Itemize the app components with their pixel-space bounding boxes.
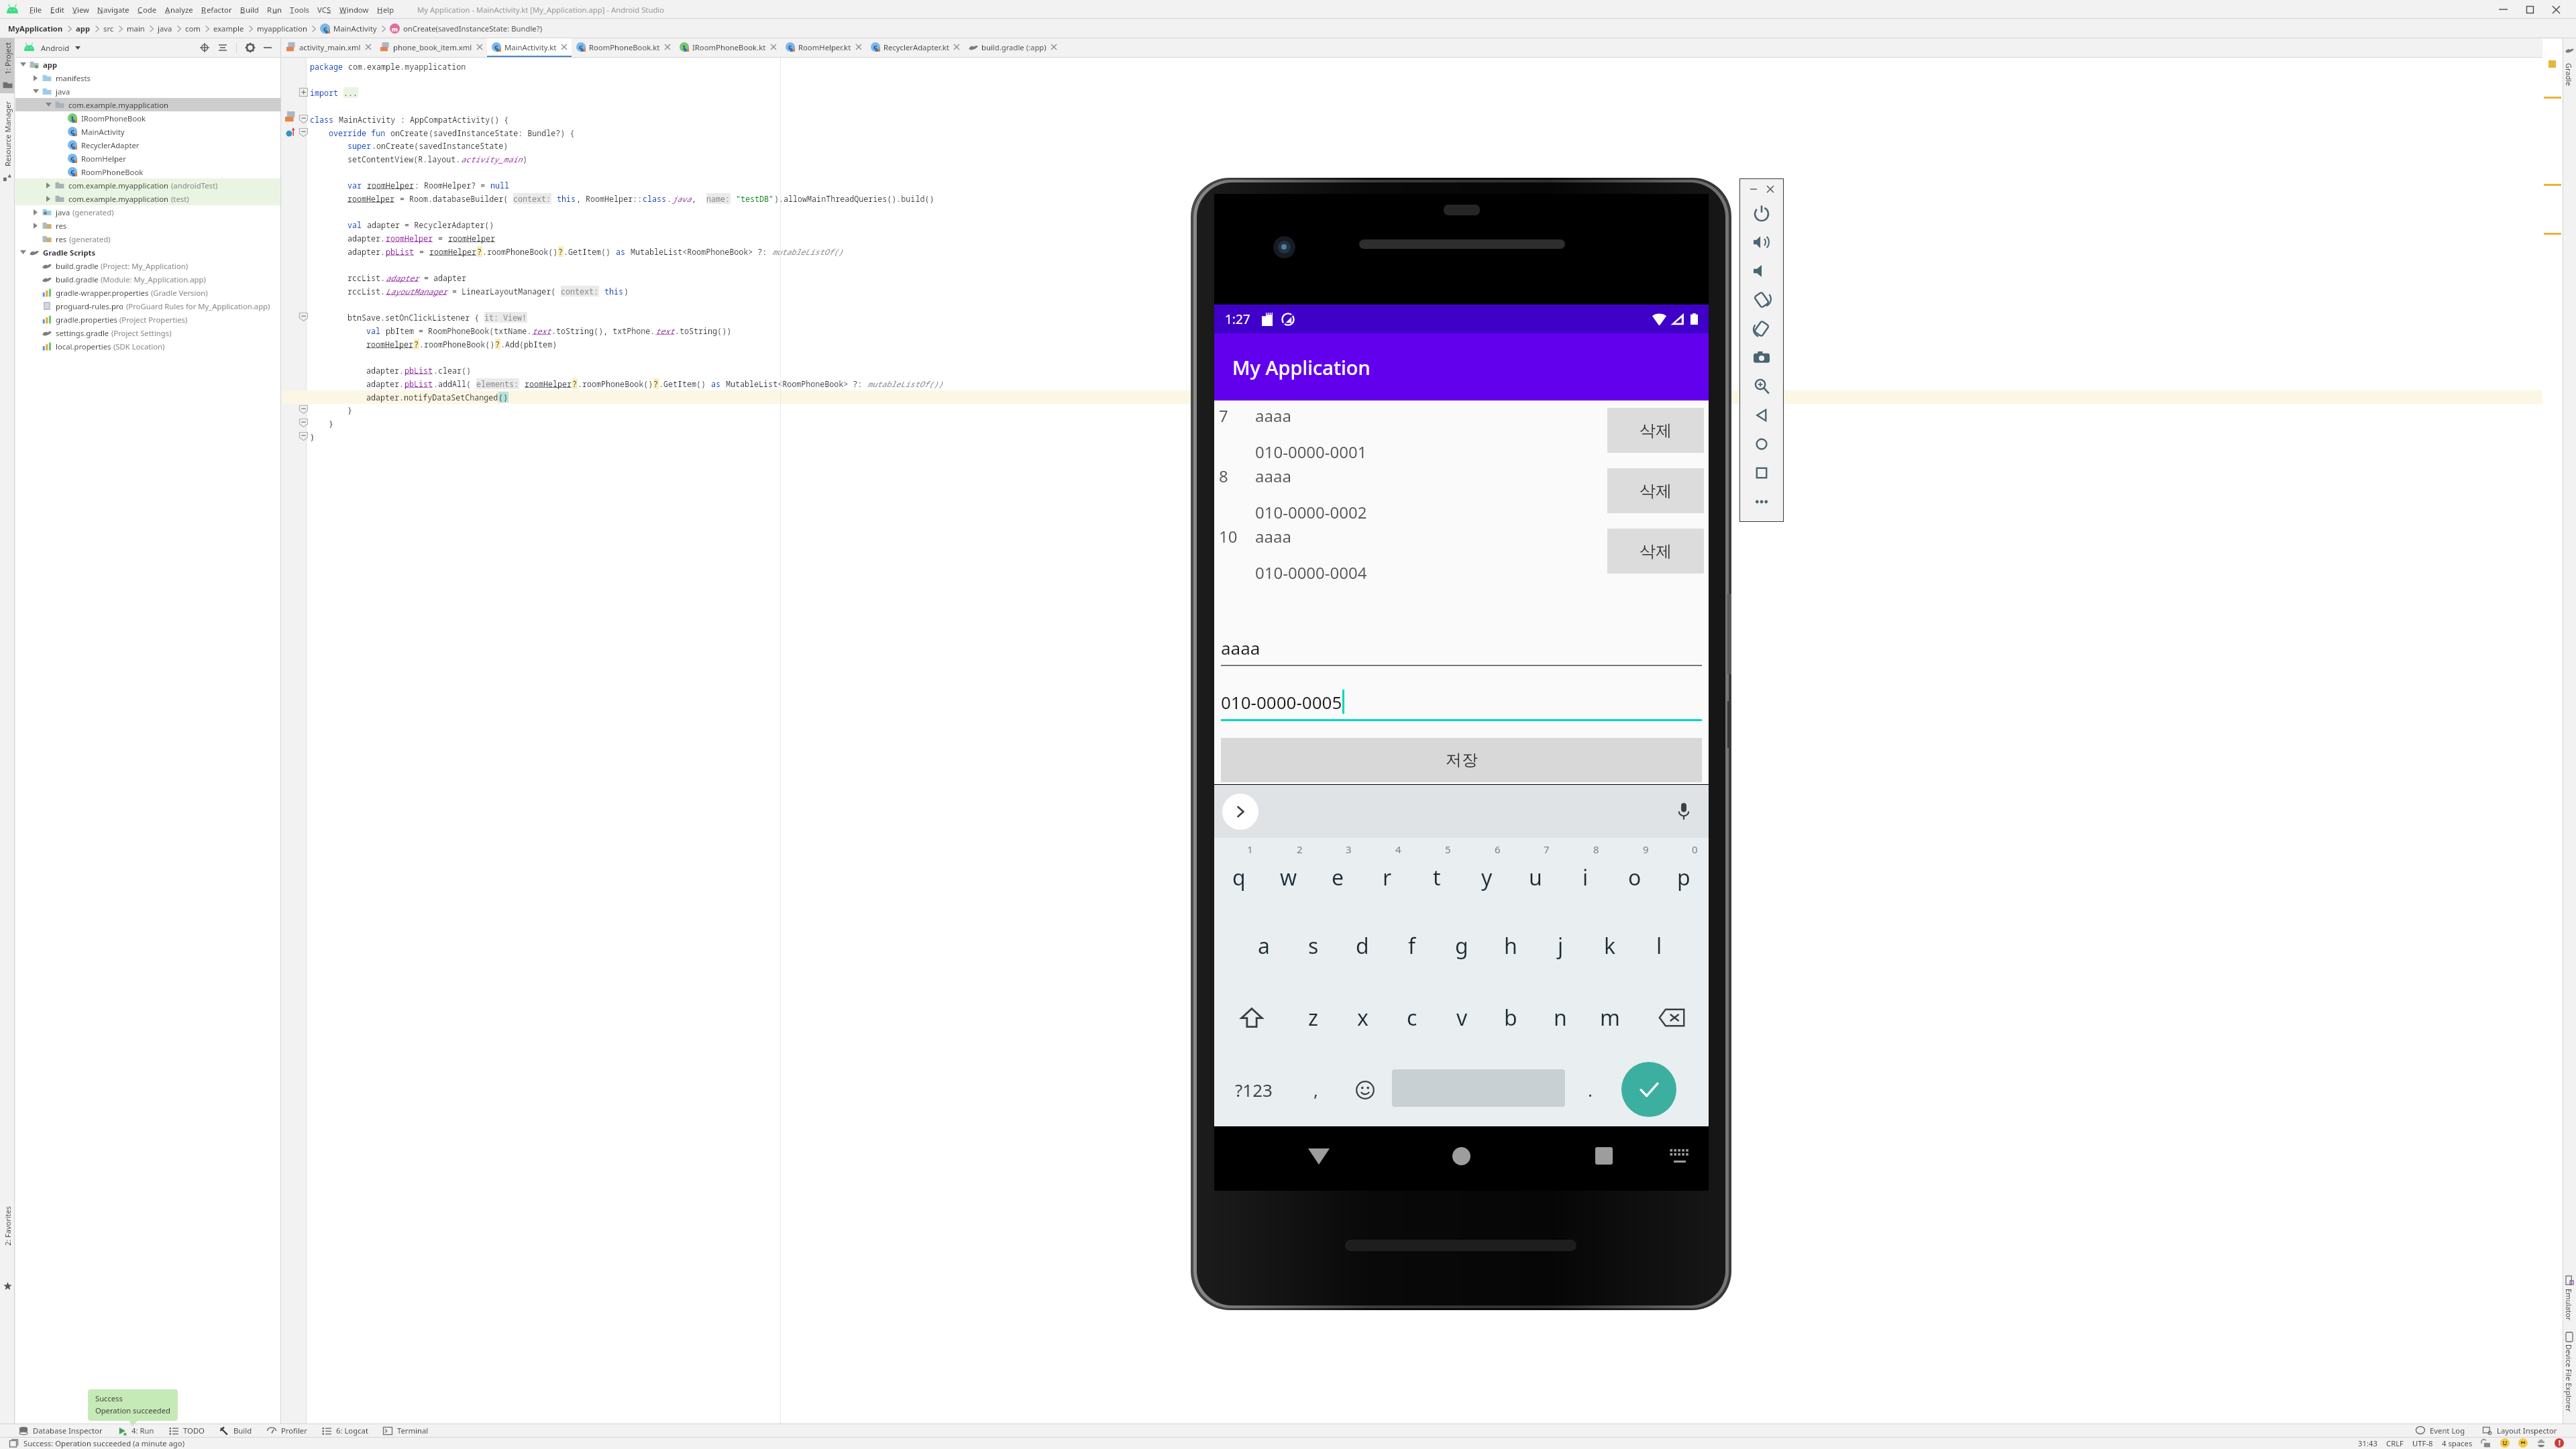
button[interactable]: Screenshot [1740, 343, 1783, 372]
button[interactable]: W [335, 2, 373, 17]
button[interactable]: Database Inspector [17, 1426, 104, 1436]
button[interactable]: Zoom [1740, 372, 1783, 400]
button[interactable]: Restore [2517, 2, 2543, 17]
button[interactable]: C [15, 152, 281, 165]
button[interactable]: res [15, 219, 281, 232]
button[interactable]: gradle.properties [15, 313, 281, 326]
button[interactable]: 6: Logcat [321, 1426, 370, 1436]
button[interactable]: Home [1740, 429, 1783, 458]
button[interactable]: l [1634, 910, 1684, 981]
button[interactable]: com.example.myapplication [15, 178, 281, 192]
button[interactable]: Resource Manager [0, 100, 15, 167]
button[interactable]: k [1585, 910, 1635, 981]
button[interactable]: 5 [1412, 838, 1462, 910]
button[interactable]: E [46, 2, 68, 17]
button[interactable]: R [263, 2, 286, 17]
button[interactable]: Build [218, 1426, 254, 1436]
button[interactable]: Settings [242, 40, 258, 56]
button[interactable]: I [675, 38, 781, 57]
button[interactable]: Voice input [1672, 800, 1695, 823]
button[interactable]: , [1293, 1053, 1338, 1126]
button[interactable]: 저장 [1221, 738, 1702, 782]
button[interactable]: R [197, 2, 236, 17]
button[interactable]: T [286, 2, 313, 17]
button[interactable]: activity_main.xml [282, 38, 376, 57]
button[interactable]: 3 [1313, 838, 1362, 910]
button[interactable]: ?123 [1214, 1053, 1293, 1126]
button[interactable]: manifests [15, 71, 281, 85]
button[interactable]: C [133, 2, 161, 17]
button[interactable]: Volume down [1740, 256, 1783, 285]
button[interactable]: N [93, 2, 133, 17]
button[interactable]: 7 [1511, 838, 1560, 910]
button[interactable]: Keyboard [1669, 1148, 1690, 1163]
button[interactable]: n [1536, 981, 1585, 1053]
button[interactable]: I [15, 111, 281, 125]
button[interactable]: 2 [1264, 838, 1313, 910]
button[interactable]: Emulator tool [2563, 1273, 2576, 1287]
button[interactable]: Layout Inspector [2481, 1426, 2559, 1436]
button[interactable]: Back [1740, 400, 1783, 429]
button[interactable]: B [236, 2, 263, 17]
button[interactable]: build.gradle [15, 259, 281, 272]
button[interactable]: C [15, 138, 281, 152]
button[interactable]: build.gradle [15, 272, 281, 286]
button[interactable]: Project files [0, 77, 15, 92]
button[interactable]: A [161, 2, 197, 17]
button[interactable]: Recents [1595, 1147, 1613, 1165]
button[interactable]: s [1289, 910, 1338, 981]
button[interactable]: Profiler [266, 1426, 309, 1436]
button[interactable]: z [1289, 981, 1338, 1053]
button[interactable]: m [1585, 981, 1635, 1053]
button[interactable]: Shift [1214, 981, 1289, 1053]
button[interactable]: g [1437, 910, 1487, 981]
button[interactable]: Close emulator [1764, 183, 1776, 195]
button[interactable]: settings.gradle [15, 326, 281, 339]
button[interactable]: d [1338, 910, 1387, 981]
button[interactable]: 삭제 [1607, 468, 1704, 513]
button[interactable]: res [15, 232, 281, 246]
button[interactable]: Power [1740, 199, 1783, 227]
button[interactable]: Device File Explorer [2563, 1344, 2576, 1411]
button[interactable]: c [1387, 981, 1437, 1053]
button[interactable]: 2: Favorites [0, 1179, 15, 1273]
button[interactable]: C [781, 38, 866, 57]
button[interactable]: TODO [168, 1426, 206, 1436]
button[interactable]: Overview [1740, 458, 1783, 487]
button[interactable]: Build variants [0, 170, 15, 184]
button[interactable]: v [1437, 981, 1487, 1053]
button[interactable]: Expand suggestions [1222, 794, 1258, 830]
button[interactable]: gradle-wrapper.properties [15, 286, 281, 299]
button[interactable]: Gradle tool [2563, 42, 2576, 57]
button[interactable]: C [866, 38, 964, 57]
button[interactable]: build.gradle (:app) [964, 38, 1061, 57]
button[interactable]: Favorites [0, 1276, 15, 1296]
button[interactable]: F [25, 2, 46, 17]
button[interactable]: 삭제 [1607, 529, 1704, 574]
button[interactable]: phone_book_item.xml [376, 38, 487, 57]
button[interactable]: a [1239, 910, 1289, 981]
button[interactable]: 9 [1610, 838, 1660, 910]
button[interactable]: Terminal [382, 1426, 430, 1436]
button[interactable]: app [15, 58, 281, 71]
button[interactable]: Close [2543, 2, 2569, 17]
button[interactable]: Collapse All [215, 40, 231, 56]
button[interactable]: 1: Project [0, 40, 15, 77]
button[interactable]: x [1338, 981, 1387, 1053]
button[interactable]: Rotate right [1740, 314, 1783, 343]
button[interactable]: java [15, 205, 281, 219]
button[interactable]: Emulator [2563, 1287, 2576, 1322]
button[interactable]: Enter [1619, 1060, 1678, 1119]
button[interactable]: f [1387, 910, 1437, 981]
button[interactable]: VC [313, 2, 335, 17]
button[interactable]: More [1740, 487, 1783, 516]
button[interactable]: Event Log [2414, 1426, 2467, 1436]
button[interactable]: local.properties [15, 339, 281, 353]
button[interactable]: proguard-rules.pro [15, 299, 281, 313]
button[interactable]: Backspace [1634, 981, 1709, 1053]
button[interactable]: V [68, 2, 93, 17]
button[interactable]: C [572, 38, 675, 57]
button[interactable]: Back [1308, 1148, 1330, 1165]
button[interactable]: Minimize [2489, 2, 2517, 17]
button[interactable]: b [1486, 981, 1536, 1053]
